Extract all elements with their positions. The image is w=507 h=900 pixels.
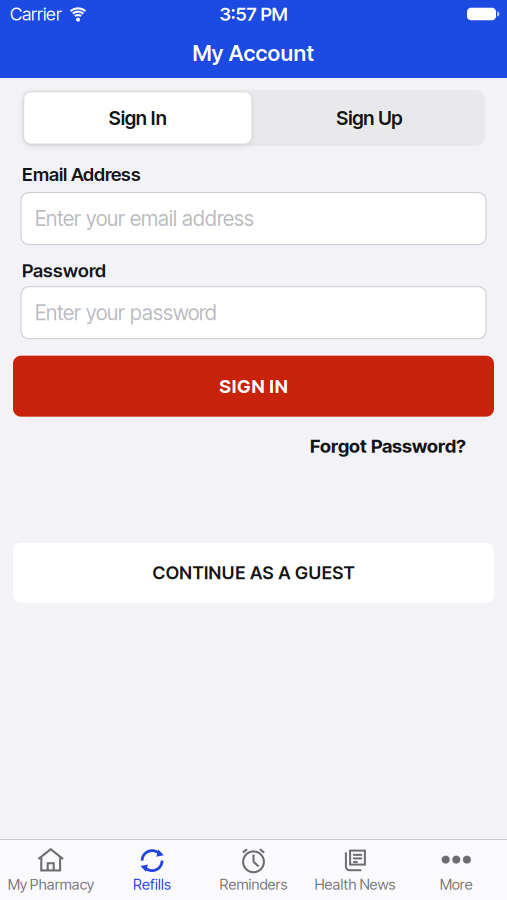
staticText: Password (22, 259, 106, 282)
button[interactable]: CONTINUE AS A GUEST (0, 543, 507, 603)
button[interactable]: Reminders (203, 841, 304, 899)
button[interactable]: Refills (101, 841, 203, 899)
staticText: More (440, 876, 473, 893)
staticText: Sign Up (336, 106, 402, 130)
staticText: Email Address (22, 163, 141, 186)
staticText: 3:57 PM (219, 3, 287, 25)
button[interactable]: More (406, 841, 507, 899)
button[interactable]: My Pharmacy (0, 841, 101, 899)
staticText: My Account (192, 40, 314, 66)
staticText: Health News (314, 876, 395, 893)
staticText: My Pharmacy (8, 876, 94, 893)
button[interactable]: Health News (304, 841, 406, 899)
staticText: SIGN IN (219, 375, 288, 397)
staticText: Sign In (109, 106, 167, 130)
staticText: Refills (133, 876, 171, 893)
staticText: Carrier (10, 3, 62, 25)
staticText: Enter your email address (35, 206, 254, 231)
button[interactable]: Sign Up (253, 90, 485, 146)
button[interactable]: Sign In (22, 90, 253, 146)
staticText: Reminders (219, 876, 287, 893)
staticText: Forgot Password? (310, 435, 466, 457)
staticText: CONTINUE AS A GUEST (152, 562, 355, 584)
button[interactable]: Forgot Password? (310, 435, 466, 457)
button[interactable]: SIGN IN (0, 356, 507, 417)
staticText: Enter your password (35, 300, 217, 325)
